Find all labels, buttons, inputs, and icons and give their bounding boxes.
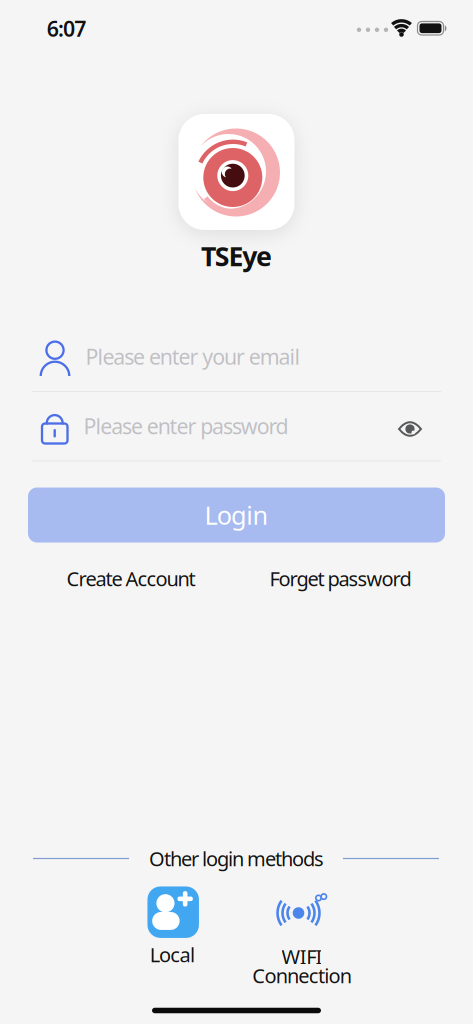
staticText: Create Account (66, 565, 195, 592)
staticText: Please enter your email (86, 342, 300, 371)
button[interactable]: Create Account (58, 557, 203, 600)
button[interactable]: Local (140, 886, 206, 966)
button[interactable] (390, 411, 430, 447)
button[interactable]: Please enter your email (0, 330, 473, 386)
staticText: Login (205, 498, 268, 532)
staticText: Other login methods (149, 845, 324, 872)
button[interactable]: Please enter password (0, 399, 473, 457)
staticText: Please enter password (83, 412, 288, 440)
button[interactable]: Login (28, 487, 445, 542)
staticText: Local (150, 941, 195, 968)
staticText: Forget password (269, 565, 411, 592)
staticText: 6:07 (47, 14, 86, 43)
staticText: TSEye (201, 238, 272, 274)
button[interactable]: WIFI (258, 889, 346, 986)
staticText: Connection (252, 962, 352, 989)
button[interactable]: Forget password (261, 557, 419, 600)
staticText: WIFI (282, 943, 322, 970)
